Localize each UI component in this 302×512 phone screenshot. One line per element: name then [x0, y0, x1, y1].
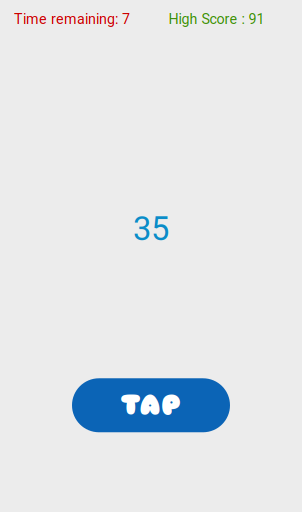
staticText: Time remaining: 7	[14, 11, 130, 27]
button[interactable]: TAP	[72, 378, 230, 432]
staticText: High Score : 91	[168, 11, 264, 27]
staticText: TAP	[120, 388, 181, 423]
staticText: 35	[133, 210, 169, 248]
